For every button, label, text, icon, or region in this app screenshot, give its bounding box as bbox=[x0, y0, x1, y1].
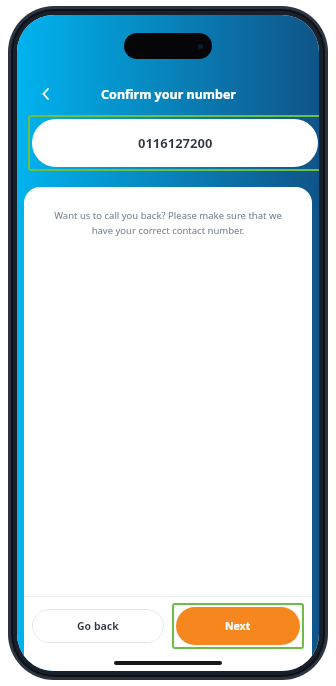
staticText: Confirm your number bbox=[101, 86, 236, 103]
staticText: Next bbox=[225, 619, 251, 633]
button[interactable]: Next bbox=[176, 607, 300, 645]
button[interactable]: Back bbox=[29, 77, 63, 111]
staticText: Go back bbox=[77, 619, 119, 633]
button[interactable]: Go back bbox=[32, 609, 164, 643]
staticText: Want us to call you back? Please make su… bbox=[44, 209, 292, 237]
button[interactable]: 0116127200 bbox=[32, 119, 318, 167]
staticText: 0116127200 bbox=[138, 134, 213, 152]
